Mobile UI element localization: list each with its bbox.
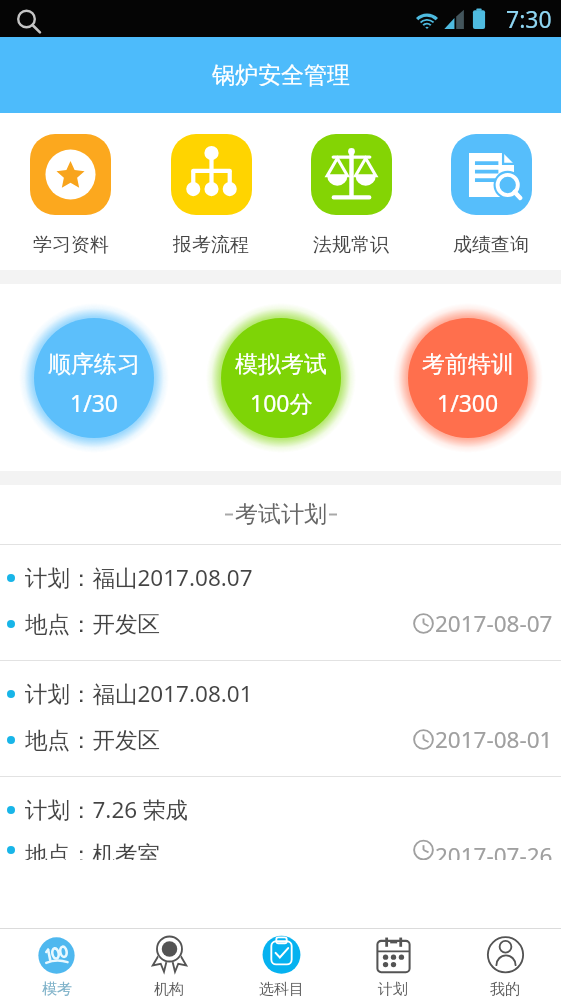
staticText: 机构 [154,980,184,999]
staticText: 计划：7.26 荣成 [25,794,188,825]
button[interactable]: Search [9,1,45,37]
staticText: 我的 [490,980,520,999]
button[interactable]: 我的 [449,929,561,999]
staticText: 1/300 [437,387,499,418]
staticText: 7:30 [506,3,552,34]
button[interactable]: 模考 [0,929,113,999]
staticText: 成绩查询 [453,233,529,257]
staticText: 选科目 [259,980,304,999]
button[interactable]: 考前特训 [393,303,543,453]
staticText: 地点：开发区 [25,610,160,638]
staticText: 地点：开发区 [25,726,160,754]
staticText: 法规常识 [313,233,389,257]
staticText: 学习资料 [33,233,109,257]
staticText: 考前特训 [422,350,514,379]
button[interactable]: 选科目 [225,929,337,999]
button[interactable]: 法规常识 [281,113,421,270]
staticText: 计划：福山2017.08.07 [25,562,253,593]
button[interactable]: 计划：7.26 荣成 [0,776,561,860]
staticText: 2017-07-26 [435,840,553,860]
staticText: 计划：福山2017.08.01 [25,678,253,709]
staticText: 锅炉安全管理 [212,61,350,90]
staticText: 100分 [250,387,313,418]
button[interactable]: 学习资料 [0,113,141,270]
staticText: 2017-08-01 [435,724,553,755]
button[interactable]: 报考流程 [141,113,281,270]
staticText: 报考流程 [173,233,249,257]
staticText: 模考 [42,980,72,999]
button[interactable]: 模拟考试 [206,303,356,453]
staticText: 模拟考试 [235,350,327,379]
staticText: 地点：机考室 [25,840,160,860]
button[interactable]: 计划：福山2017.08.01 [0,660,561,776]
button[interactable]: 成绩查询 [421,113,561,270]
button[interactable]: 机构 [113,929,225,999]
button[interactable]: 计划：福山2017.08.07 [0,544,561,660]
staticText: 考试计划 [235,500,327,529]
staticText: 2017-08-07 [435,608,553,639]
staticText: 计划 [378,980,408,999]
staticText: 顺序练习 [48,350,140,379]
staticText: 1/30 [70,387,119,418]
button[interactable]: 顺序练习 [19,303,169,453]
button[interactable]: 计划 [337,929,449,999]
